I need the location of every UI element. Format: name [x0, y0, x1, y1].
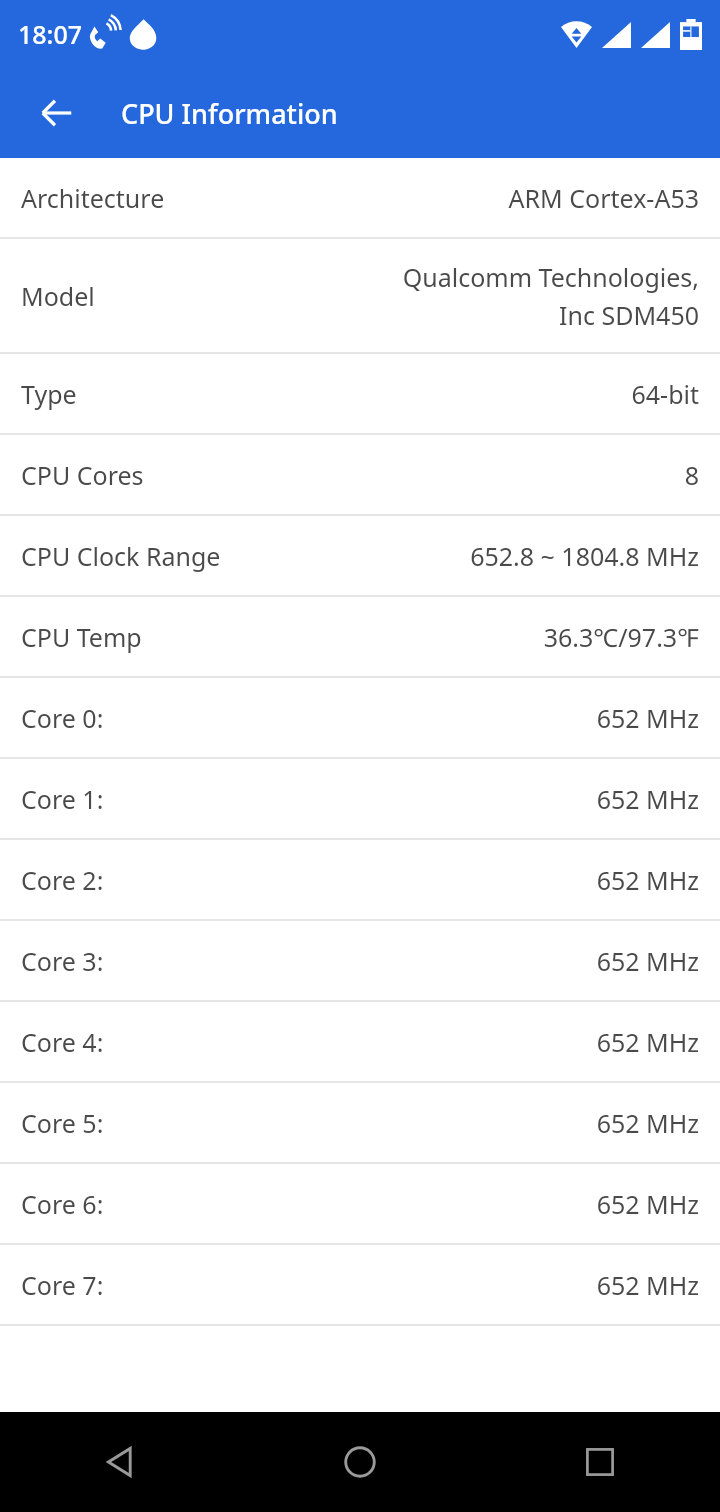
- staticText: 652 MHz: [596, 1106, 699, 1140]
- staticText: Architecture: [21, 181, 165, 215]
- button[interactable]: Core 2:: [0, 840, 720, 919]
- button[interactable]: Core 0:: [0, 678, 720, 757]
- staticText: CPU Clock Range: [21, 539, 221, 573]
- staticText: 652.8 ~ 1804.8 MHz: [470, 539, 699, 573]
- staticText: Core 4:: [21, 1025, 104, 1059]
- staticText: Core 1:: [21, 782, 104, 816]
- staticText: Core 6:: [21, 1187, 104, 1221]
- staticText: Core 5:: [21, 1106, 104, 1140]
- button[interactable]: Recent apps: [480, 1412, 720, 1512]
- button[interactable]: CPU Temp: [0, 597, 720, 676]
- button[interactable]: CPU Clock Range: [0, 516, 720, 595]
- button[interactable]: Core 3:: [0, 921, 720, 1000]
- button[interactable]: CPU Cores: [0, 435, 720, 514]
- button[interactable]: Core 1:: [0, 759, 720, 838]
- staticText: Core 2:: [21, 863, 104, 897]
- staticText: 652 MHz: [596, 701, 699, 735]
- staticText: Qualcomm Technologies, Inc SDM450: [402, 260, 699, 332]
- staticText: Core 0:: [21, 701, 104, 735]
- staticText: 652 MHz: [596, 863, 699, 897]
- staticText: 652 MHz: [596, 1187, 699, 1221]
- staticText: 652 MHz: [596, 944, 699, 978]
- button[interactable]: Model: [0, 239, 720, 352]
- staticText: 18:07: [18, 17, 83, 51]
- staticText: Core 7:: [21, 1268, 104, 1302]
- staticText: CPU Temp: [21, 620, 142, 654]
- button[interactable]: Core 5:: [0, 1083, 720, 1162]
- staticText: 36.3℃/97.3℉: [543, 620, 699, 654]
- button[interactable]: Architecture: [0, 158, 720, 237]
- staticText: ARM Cortex-A53: [508, 181, 699, 215]
- staticText: 652 MHz: [596, 1268, 699, 1302]
- button[interactable]: Core 6:: [0, 1164, 720, 1243]
- staticText: 8: [684, 458, 699, 492]
- staticText: 64-bit: [631, 377, 699, 411]
- staticText: 652 MHz: [596, 1025, 699, 1059]
- button[interactable]: Type: [0, 354, 720, 433]
- staticText: Model: [21, 279, 95, 313]
- staticText: Core 3:: [21, 944, 104, 978]
- button[interactable]: Core 7:: [0, 1245, 720, 1324]
- button[interactable]: Home: [240, 1412, 480, 1512]
- button[interactable]: Core 4:: [0, 1002, 720, 1081]
- button[interactable]: Back: [0, 1412, 240, 1512]
- button[interactable]: Back: [25, 81, 89, 145]
- staticText: CPU Information: [121, 95, 338, 132]
- staticText: Type: [21, 377, 77, 411]
- staticText: CPU Cores: [21, 458, 144, 492]
- staticText: 652 MHz: [596, 782, 699, 816]
